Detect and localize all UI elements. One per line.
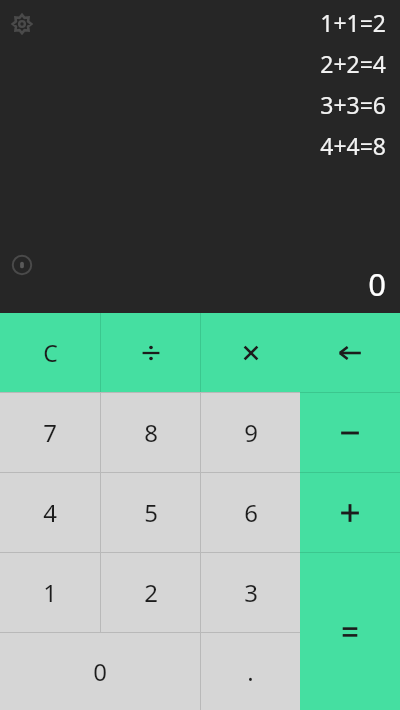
button[interactable]: Settings — [9, 11, 35, 37]
button[interactable]: History — [9, 252, 35, 278]
staticText: 5 — [144, 496, 158, 529]
button[interactable]: Minus — [300, 393, 400, 472]
staticText: 2 — [144, 576, 158, 609]
staticText: 1+1=2 — [320, 7, 386, 38]
staticText: 4 — [43, 496, 57, 529]
staticText: 1 — [43, 576, 57, 609]
staticText: . — [247, 655, 254, 688]
staticText: 3+3=6 — [320, 89, 386, 120]
staticText: 2+2=4 — [320, 48, 386, 79]
staticText: C — [43, 337, 58, 368]
staticText: 7 — [43, 416, 57, 449]
button[interactable]: 4 — [0, 473, 100, 552]
staticText: 8 — [144, 416, 158, 449]
staticText: 0 — [368, 263, 386, 305]
button[interactable]: 3 — [201, 553, 300, 632]
button[interactable]: Plus — [300, 473, 400, 552]
button[interactable]: Equals — [300, 553, 400, 710]
button[interactable]: Divide — [101, 313, 200, 392]
button[interactable]: 9 — [201, 393, 300, 472]
staticText: 6 — [244, 496, 258, 529]
button[interactable]: 5 — [101, 473, 200, 552]
staticText: 4+4=8 — [320, 130, 386, 161]
button[interactable]: Multiply — [201, 313, 300, 392]
staticText: 3 — [244, 576, 258, 609]
button[interactable]: 0 — [0, 633, 200, 710]
button[interactable]: Backspace — [300, 313, 400, 392]
staticText: 0 — [93, 655, 107, 688]
button[interactable]: 1 — [0, 553, 100, 632]
button[interactable]: C — [0, 313, 100, 392]
button[interactable]: 7 — [0, 393, 100, 472]
button[interactable]: 6 — [201, 473, 300, 552]
button[interactable]: . — [201, 633, 300, 710]
button[interactable]: 2 — [101, 553, 200, 632]
staticText: 9 — [244, 416, 258, 449]
button[interactable]: 8 — [101, 393, 200, 472]
